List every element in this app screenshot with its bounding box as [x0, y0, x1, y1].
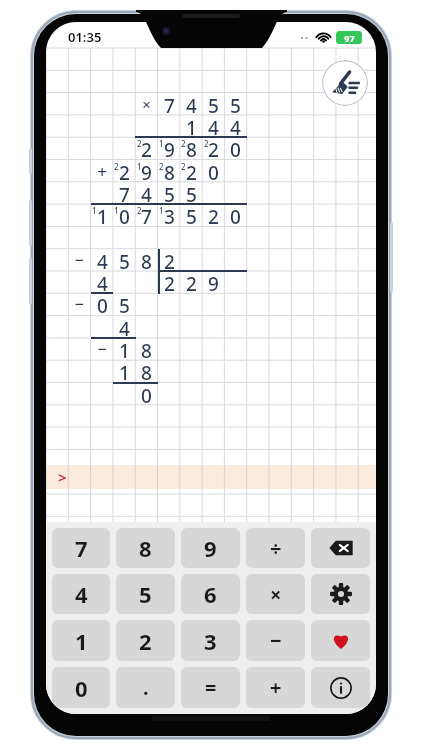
staticText: 2 [181, 161, 186, 170]
button[interactable]: 4 [52, 574, 110, 614]
staticText: 9 [141, 160, 152, 182]
button[interactable]: ÷ [246, 528, 305, 568]
button[interactable]: 1 [52, 620, 110, 661]
button[interactable]: 7 [52, 528, 110, 568]
button[interactable]: Clear [322, 60, 368, 106]
staticText: 01:35 [68, 28, 102, 46]
staticText: 5 [119, 249, 130, 271]
staticText: 2 [137, 138, 142, 147]
staticText: 0 [208, 160, 219, 182]
staticText: 8 [186, 137, 197, 159]
staticText: 5 [139, 579, 152, 609]
staticText: 1 [75, 626, 88, 656]
staticText: 2 [164, 271, 175, 293]
staticText: 9 [208, 271, 219, 293]
staticText: 2 [186, 271, 197, 293]
staticText: 8 [141, 249, 152, 271]
staticText: 4 [141, 182, 152, 204]
staticText: − [74, 293, 84, 315]
button[interactable]: × [246, 574, 305, 614]
staticText: 3 [164, 204, 175, 226]
staticText: 1 [97, 204, 108, 226]
button[interactable]: 8 [116, 528, 175, 568]
button[interactable]: 5 [116, 574, 175, 614]
staticText: 4 [119, 316, 130, 338]
staticText: 1 [137, 161, 142, 170]
staticText: × [270, 581, 282, 608]
staticText: − [74, 249, 84, 271]
button[interactable]: − [246, 620, 305, 661]
staticText: 97 [344, 32, 355, 44]
staticText: 1 [119, 338, 130, 360]
staticText: 2 [204, 138, 209, 147]
staticText: + [97, 160, 107, 182]
staticText: . [143, 674, 149, 701]
staticText: 7 [141, 204, 152, 226]
staticText: 4 [186, 93, 197, 115]
staticText: 1 [119, 360, 130, 382]
staticText: 2 [137, 205, 142, 214]
staticText: 5 [230, 93, 241, 115]
button[interactable]: + [246, 667, 305, 708]
staticText: 1 [92, 205, 97, 214]
button[interactable]: Info [311, 667, 370, 708]
staticText: 0 [119, 204, 130, 226]
button[interactable]: 0 [52, 667, 110, 708]
staticText: 1 [114, 205, 119, 214]
button[interactable]: 3 [181, 620, 240, 661]
staticText: 0 [97, 293, 108, 315]
staticText: 2 [159, 161, 164, 170]
button[interactable]: 2 [116, 620, 175, 661]
staticText: ÷ [270, 535, 282, 562]
staticText: 0 [141, 383, 152, 405]
staticText: 5 [186, 182, 197, 204]
staticText: > [58, 467, 67, 487]
staticText: 4 [97, 249, 108, 271]
button[interactable]: Favorite [311, 620, 370, 661]
staticText: + [270, 674, 282, 701]
staticText: 0 [230, 137, 241, 159]
staticText: 1 [186, 115, 197, 137]
button[interactable]: 6 [181, 574, 240, 614]
staticText: 5 [208, 93, 219, 115]
button[interactable]: Delete [311, 528, 370, 568]
staticText: 9 [204, 533, 217, 563]
staticText: 9 [164, 137, 175, 159]
staticText: 5 [119, 293, 130, 315]
staticText: 0 [230, 204, 241, 226]
staticText: × [142, 94, 151, 114]
staticText: − [97, 338, 107, 360]
staticText: 2 [119, 160, 130, 182]
staticText: 5 [186, 204, 197, 226]
button[interactable]: Settings [311, 574, 370, 614]
staticText: 2 [208, 204, 219, 226]
staticText: = [205, 674, 217, 701]
button[interactable]: . [116, 667, 175, 708]
staticText: 4 [230, 115, 241, 137]
staticText: 7 [119, 182, 130, 204]
staticText: 8 [141, 338, 152, 360]
staticText: 8 [164, 160, 175, 182]
staticText: 3 [204, 626, 217, 656]
staticText: 5 [164, 182, 175, 204]
staticText: 7 [164, 93, 175, 115]
staticText: 2 [139, 626, 152, 656]
staticText: 8 [141, 360, 152, 382]
staticText: 2 [114, 161, 119, 170]
staticText: 2 [186, 160, 197, 182]
staticText: 2 [164, 249, 175, 271]
staticText: 0 [75, 673, 88, 703]
button[interactable]: = [181, 667, 240, 708]
button[interactable]: > [46, 465, 376, 489]
staticText: 7 [75, 533, 88, 563]
staticText: 6 [204, 579, 217, 609]
staticText: 2 [208, 137, 219, 159]
staticText: 1 [159, 205, 164, 214]
staticText: 4 [75, 579, 88, 609]
button[interactable]: 9 [181, 528, 240, 568]
staticText: 2 [141, 137, 152, 159]
staticText: 8 [139, 533, 152, 563]
staticText: 2 [181, 138, 186, 147]
staticText: 4 [208, 115, 219, 137]
staticText: 1 [159, 138, 164, 147]
